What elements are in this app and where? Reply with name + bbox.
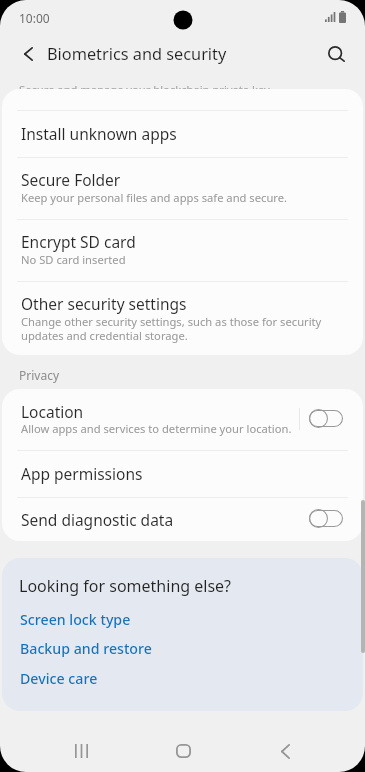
staticText: Other security settings: [21, 293, 187, 314]
button[interactable]: Navigate up: [9, 35, 47, 73]
button[interactable]: Recent apps: [51, 728, 111, 772]
staticText: Secure Folder: [21, 169, 121, 190]
button[interactable]: Device care: [20, 669, 98, 688]
staticText: Looking for something else?: [19, 575, 232, 597]
button[interactable]: Back: [255, 728, 315, 772]
staticText: Send diagnostic data: [21, 509, 174, 530]
staticText: Biometrics and security: [47, 43, 227, 65]
button[interactable]: [2, 281, 363, 355]
staticText: Change other security settings, such as …: [21, 314, 322, 329]
button[interactable]: [2, 389, 363, 450]
staticText: Screen lock type: [20, 610, 131, 629]
staticText: Privacy: [19, 367, 60, 383]
staticText: No SD card inserted: [21, 252, 126, 267]
staticText: Location: [21, 401, 84, 422]
button[interactable]: Toggle: [309, 409, 343, 428]
staticText: Secure and manage your blockchain privat…: [19, 82, 273, 97]
button[interactable]: Toggle: [309, 509, 343, 528]
button[interactable]: Backup and restore: [20, 639, 152, 658]
staticText: Allow apps and services to determine you…: [21, 421, 292, 436]
staticText: Encrypt SD card: [21, 231, 136, 252]
button[interactable]: [2, 219, 363, 281]
staticText: 10:00: [19, 10, 50, 26]
staticText: Backup and restore: [20, 639, 152, 658]
button[interactable]: Search: [317, 35, 355, 73]
staticText: Install unknown apps: [21, 123, 177, 144]
staticText: App permissions: [21, 463, 143, 484]
button[interactable]: [2, 157, 363, 219]
staticText: Device care: [20, 669, 98, 688]
staticText: Keep your personal files and apps safe a…: [21, 190, 287, 205]
button[interactable]: [2, 450, 363, 497]
button[interactable]: [2, 110, 363, 157]
button[interactable]: Home: [153, 728, 213, 772]
staticText: updates and credential storage.: [21, 328, 188, 343]
button[interactable]: [2, 497, 363, 541]
button[interactable]: Screen lock type: [20, 610, 131, 629]
